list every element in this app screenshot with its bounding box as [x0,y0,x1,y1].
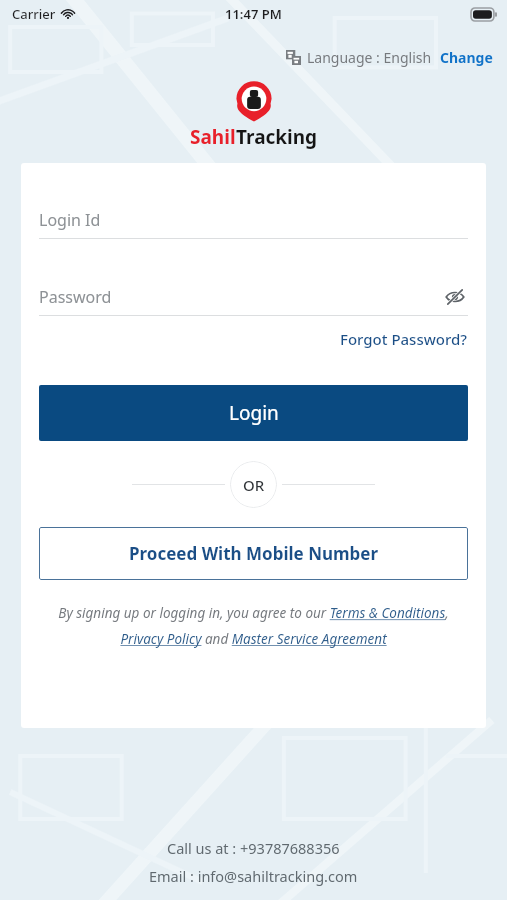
button[interactable]: Password [39,278,468,315]
staticText: Login Id [39,209,101,231]
staticText: Change [440,48,493,67]
staticText: By signing up or logging in, you agree t… [41,604,466,648]
other: Translate [286,50,301,65]
staticText: 11:47 PM [225,5,282,23]
button[interactable]: Login [39,385,468,441]
staticText: Proceed With Mobile Number [129,542,379,565]
staticText: Email : info@sahiltracking.com [149,866,358,886]
staticText: Call us at : +93787688356 [167,838,340,858]
staticText: Password [39,286,112,308]
staticText: Login [229,400,279,426]
button[interactable]: By signing up or logging in, you agree t… [41,604,466,648]
staticText: Tracking [236,124,318,150]
button[interactable]: Show password [442,284,468,310]
staticText: Carrier [12,5,56,23]
button[interactable]: Forgot Password? [340,326,468,352]
staticText: Forgot Password? [340,329,468,349]
staticText: Sahil [190,124,236,150]
button[interactable]: Login Id [39,201,468,238]
button[interactable]: Change [440,48,493,67]
staticText: Language : English [307,48,432,67]
button[interactable]: Proceed With Mobile Number [39,527,468,580]
staticText: OR [243,475,265,495]
